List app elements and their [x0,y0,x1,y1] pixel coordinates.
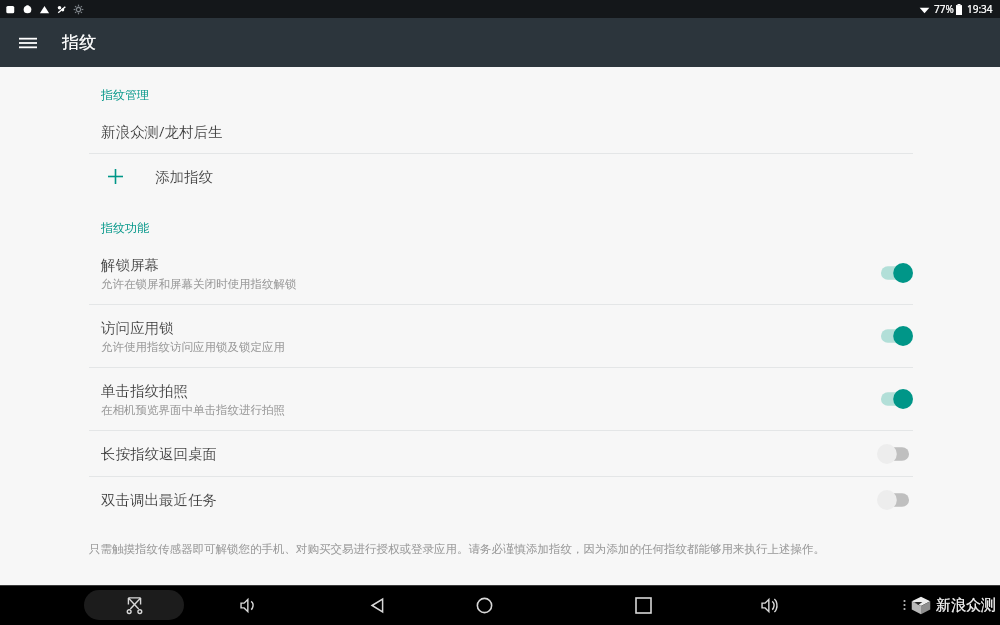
staticText: 在相机预览界面中单击指纹进行拍照 [101,403,285,417]
staticText: 指纹管理 [101,87,149,102]
staticText: 访问应用锁 [101,319,174,337]
staticText: 指纹功能 [101,220,149,235]
staticText: 长按指纹返回桌面 [101,445,217,463]
staticText: 77% [934,2,954,16]
staticText: 新浪众测 [936,596,996,615]
button[interactable]: Recents [626,588,660,622]
button[interactable]: 访问应用锁 [0,305,1000,367]
button[interactable]: Menu [12,27,44,59]
staticText: 添加指纹 [155,168,213,186]
staticText: 单击指纹拍照 [101,382,188,400]
staticText: 只需触摸指纹传感器即可解锁您的手机、对购买交易进行授权或登录应用。请务必谨慎添加… [89,542,918,556]
staticText: 双击调出最近任务 [101,491,217,509]
button[interactable]: Home [467,588,501,622]
button[interactable]: Volume up [751,588,785,622]
staticText: 19:34 [967,2,993,16]
staticText: 指纹 [62,32,96,53]
button[interactable]: Screenshot [84,590,184,620]
button[interactable]: 解锁屏幕 [0,242,1000,304]
button[interactable]: Back [360,588,394,622]
button[interactable]: 添加指纹 [0,154,1000,199]
staticText: 新浪众测/龙村后生 [101,121,223,141]
button[interactable]: 长按指纹返回桌面 [0,431,1000,476]
staticText: 允许使用指纹访问应用锁及锁定应用 [101,340,285,354]
staticText: 解锁屏幕 [101,256,159,274]
staticText: 允许在锁屏和屏幕关闭时使用指纹解锁 [101,277,297,291]
button[interactable]: 单击指纹拍照 [0,368,1000,430]
button[interactable]: Volume down [230,588,264,622]
button[interactable]: 新浪众测/龙村后生 [0,109,1000,153]
button[interactable]: 双击调出最近任务 [0,477,1000,522]
